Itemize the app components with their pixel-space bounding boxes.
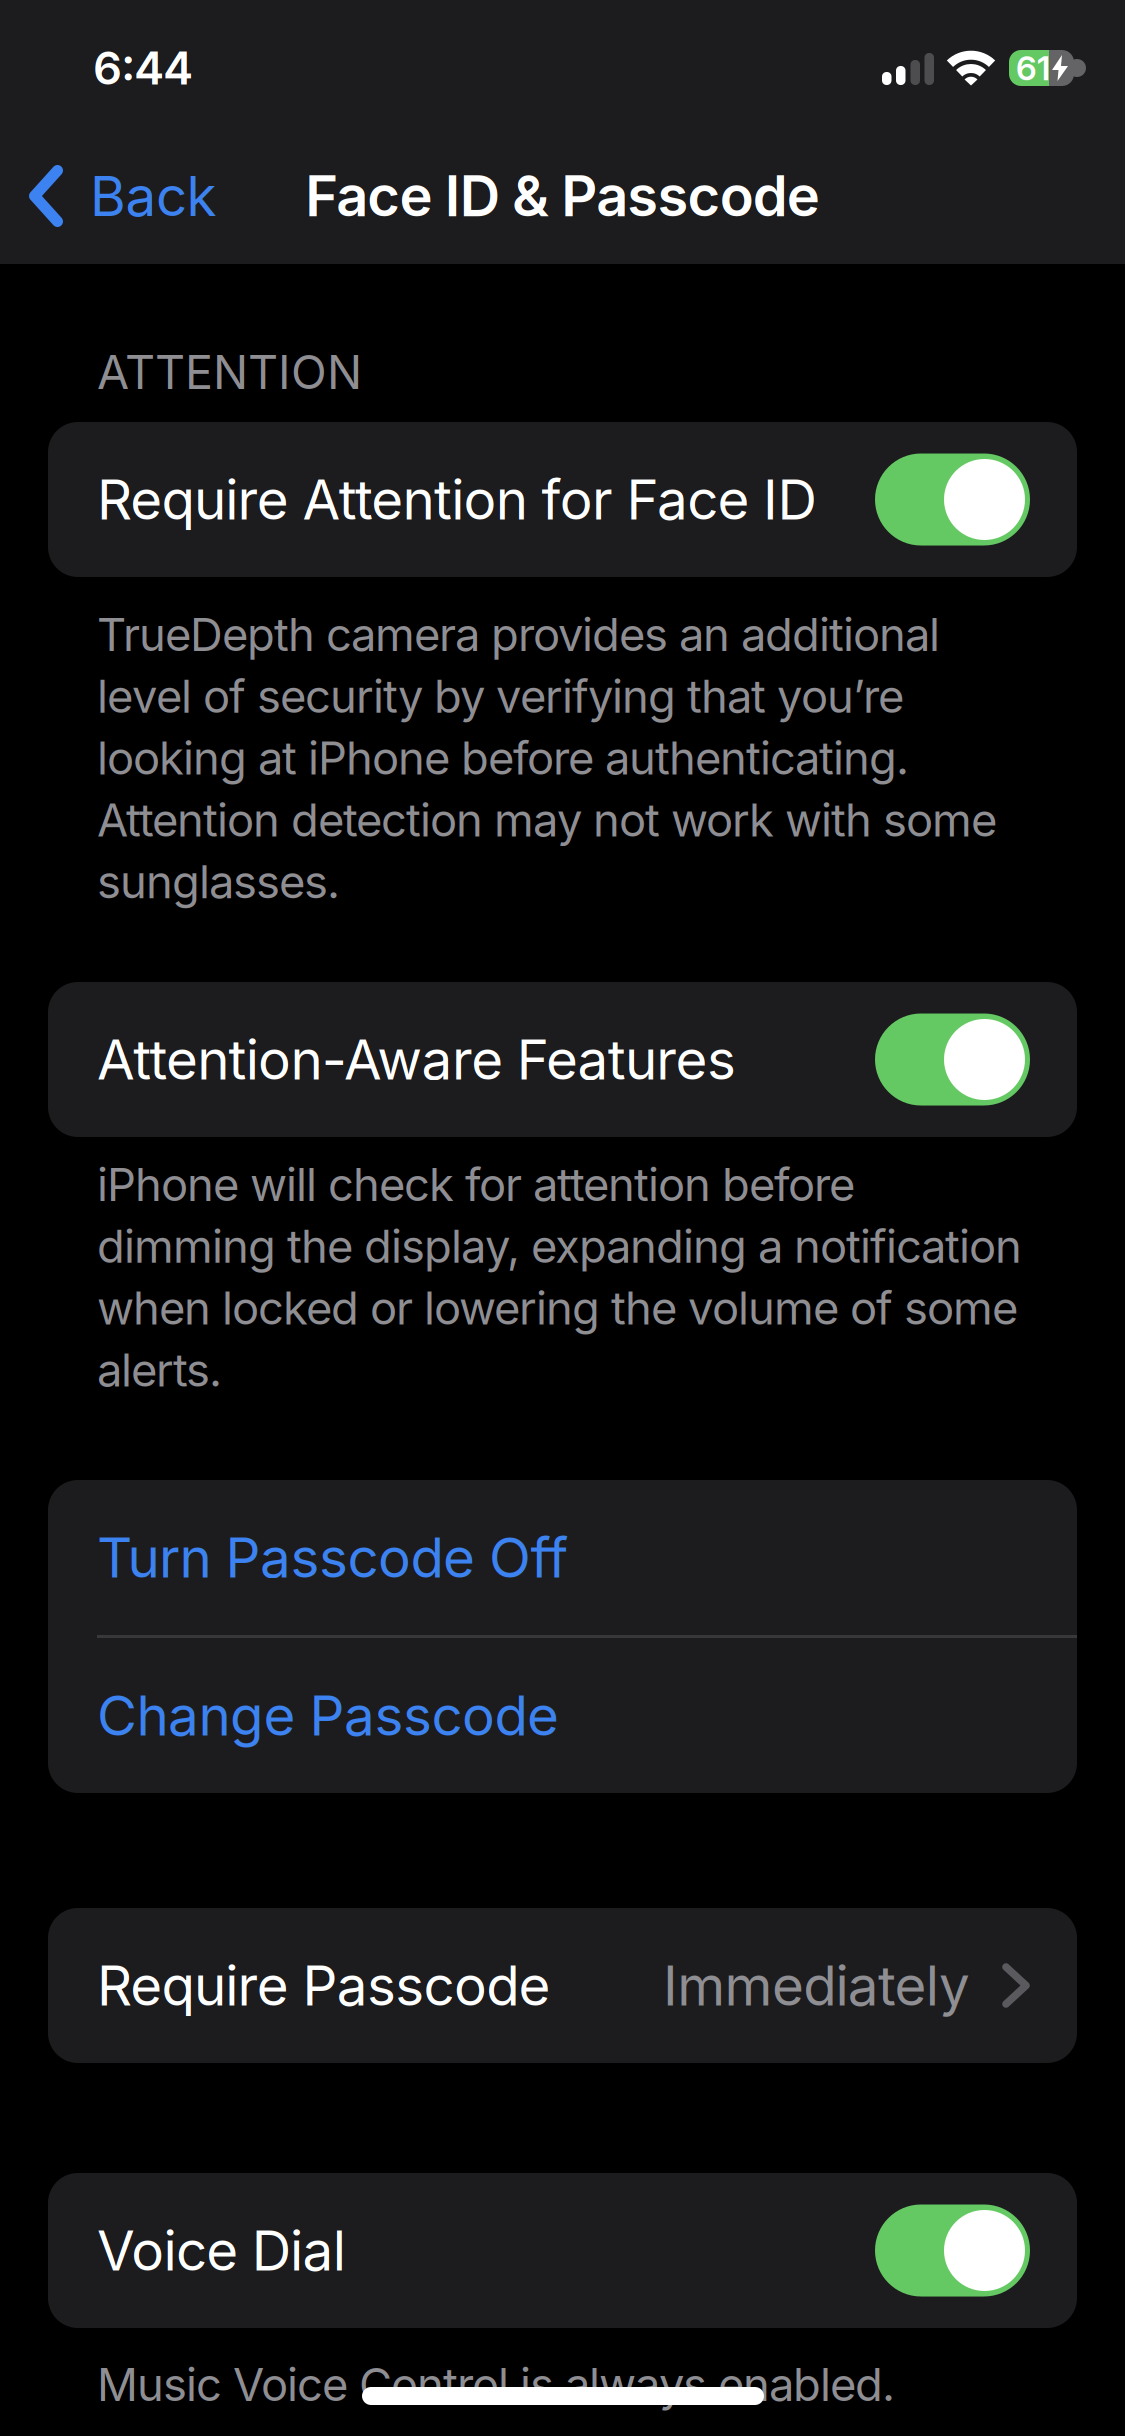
button[interactable]: Change Passcode (48, 1638, 1077, 1793)
staticText: iPhone will check for attention before d… (97, 1157, 1022, 1397)
staticText: Attention-Aware Features (97, 1026, 736, 1092)
staticText: Music Voice Control is always enabled. (97, 2357, 895, 2412)
staticText: 6:44 (93, 41, 193, 95)
staticText: Turn Passcode Off (97, 1524, 568, 1590)
staticText: Back (90, 163, 216, 229)
button[interactable]: Require Attention for Face ID (875, 453, 1030, 545)
staticText: TrueDepth camera provides an additional … (97, 607, 997, 909)
staticText: ATTENTION (97, 344, 362, 400)
button[interactable]: Voice Dial (875, 2204, 1030, 2296)
staticText: 61 (1016, 48, 1050, 88)
button[interactable]: Attention-Aware Features (875, 1013, 1030, 1105)
button[interactable]: Back (29, 130, 216, 262)
button[interactable]: Require Passcode (48, 1908, 1077, 2063)
staticText: Require Attention for Face ID (97, 466, 816, 532)
staticText: Require Passcode (97, 1952, 550, 2018)
staticText: Voice Dial (97, 2217, 346, 2283)
staticText: Face ID & Passcode (305, 162, 820, 230)
staticText: Immediately (663, 1952, 970, 2018)
button[interactable]: Turn Passcode Off (48, 1480, 1077, 1635)
staticText: Change Passcode (97, 1682, 559, 1748)
